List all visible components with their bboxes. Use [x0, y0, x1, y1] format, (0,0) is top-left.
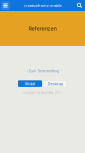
staticText: Referenzen: [28, 25, 56, 32]
staticText: Copyright creativeframe 2017: [22, 91, 63, 94]
staticText: Desktop: [47, 81, 62, 86]
staticText: ‹ Zum Seitenanfang: [26, 68, 58, 73]
button[interactable]: Menu: [1, 1, 10, 10]
button[interactable]: Search: [75, 1, 84, 10]
button[interactable]: Desktop: [43, 80, 67, 87]
staticText: Mobil: [25, 81, 35, 86]
button[interactable]: ‹ Zum Seitenanfang: [26, 68, 58, 73]
button[interactable]: Mobil: [18, 80, 42, 87]
staticText: creativeframe mobile: [23, 3, 61, 8]
